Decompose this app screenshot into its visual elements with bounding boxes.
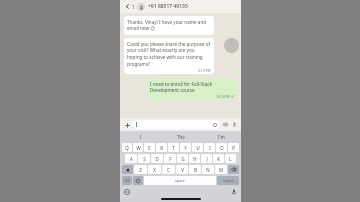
button[interactable]: N <box>202 165 214 174</box>
staticText: 4:13 PM <box>198 68 211 72</box>
button[interactable]: Return <box>217 176 239 185</box>
button[interactable]: Backspace <box>228 165 239 174</box>
staticText: I'm <box>218 134 225 140</box>
button[interactable]: B <box>189 165 201 174</box>
staticText: Y <box>184 145 187 151</box>
button[interactable]: L <box>225 154 236 163</box>
staticText: 1 <box>132 4 135 10</box>
button[interactable]: R <box>156 143 167 152</box>
staticText: B <box>194 167 197 173</box>
staticText: The <box>177 134 185 140</box>
staticText: Q <box>125 145 129 151</box>
staticText: G <box>181 156 185 162</box>
staticText: A <box>130 156 133 162</box>
button[interactable]: M <box>215 165 227 174</box>
staticText: F <box>169 156 172 162</box>
button[interactable]: S <box>138 154 150 163</box>
button[interactable]: Thanks, Vinay! I have your name and emai… <box>124 16 214 35</box>
button[interactable]: C <box>162 165 175 174</box>
button[interactable]: Sticker <box>212 122 217 127</box>
button[interactable]: Emoji <box>133 176 143 185</box>
button[interactable]: O <box>216 143 227 152</box>
button[interactable]: H <box>189 154 200 163</box>
button[interactable]: J <box>201 154 212 163</box>
staticText: Thanks, Vinay! I have your name and emai… <box>127 19 211 32</box>
button[interactable]: Could you please share the purpose of yo… <box>124 38 214 74</box>
button[interactable]: I <box>120 131 161 142</box>
staticText: +91 88517 49135 <box>148 3 188 10</box>
button[interactable]: G <box>177 154 188 163</box>
button[interactable]: T <box>168 143 179 152</box>
button[interactable]: Q <box>122 143 132 152</box>
staticText: Z <box>139 167 142 173</box>
button[interactable]: Voice message <box>231 121 238 128</box>
staticText: I <box>140 134 142 140</box>
button[interactable]: Space <box>144 176 216 185</box>
staticText: J <box>206 156 208 162</box>
staticText: return <box>223 178 234 183</box>
button[interactable]: I <box>204 143 215 152</box>
staticText: S <box>143 156 146 162</box>
staticText: T <box>172 145 175 151</box>
button[interactable]: The <box>161 131 201 142</box>
staticText: P <box>232 145 235 151</box>
button[interactable]: X <box>148 165 161 174</box>
button[interactable]: Change keyboard <box>124 189 130 195</box>
button[interactable]: U <box>192 143 203 152</box>
staticText: Could you please share the purpose of yo… <box>127 41 211 68</box>
button[interactable]: Back <box>123 2 132 11</box>
button[interactable]: Numbers <box>122 176 132 185</box>
staticText: C <box>167 167 170 173</box>
button[interactable]: Z <box>134 165 147 174</box>
staticText: space <box>175 178 185 183</box>
button[interactable]: K <box>213 154 224 163</box>
button[interactable]: F <box>164 154 176 163</box>
staticText: K <box>217 156 220 162</box>
staticText: 4:14 PM <box>217 94 230 98</box>
button[interactable]: A <box>125 154 137 163</box>
staticText: W <box>136 145 141 151</box>
staticText: M <box>219 167 223 173</box>
button[interactable] <box>122 165 133 174</box>
button[interactable]: Camera <box>222 121 229 128</box>
staticText: N <box>206 167 210 173</box>
staticText: O <box>220 145 224 151</box>
button[interactable]: W <box>133 143 143 152</box>
staticText: L <box>229 156 232 162</box>
button[interactable]: D <box>151 154 163 163</box>
button[interactable]: Attach <box>123 121 131 129</box>
button[interactable]: I'm <box>201 131 241 142</box>
button[interactable]: I need to enroll for Full-Stack Developm… <box>147 78 237 100</box>
staticText: D <box>155 156 159 162</box>
staticText: R <box>160 145 163 151</box>
button[interactable]: Dictate <box>231 189 237 195</box>
staticText: I <box>209 145 211 151</box>
button[interactable]: P <box>228 143 239 152</box>
staticText: X <box>153 167 156 173</box>
button[interactable]: V <box>176 165 188 174</box>
staticText: U <box>196 145 200 151</box>
button[interactable]: E <box>144 143 155 152</box>
staticText: V <box>181 167 184 173</box>
staticText: I need to enroll for Full-Stack Developm… <box>150 81 234 94</box>
button[interactable]: Sticker <box>133 120 220 129</box>
staticText: 123 <box>124 179 130 183</box>
button[interactable]: Y <box>180 143 191 152</box>
staticText: H <box>193 156 197 162</box>
staticText: E <box>148 145 151 151</box>
